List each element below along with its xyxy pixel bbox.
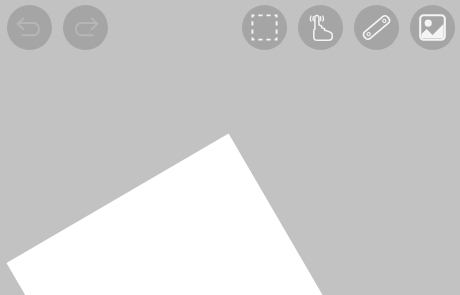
button[interactable]: Ruler: [354, 5, 399, 50]
button[interactable]: Undo: [7, 5, 52, 50]
button[interactable]: Select area: [242, 5, 287, 50]
button[interactable]: Touch draw: [298, 5, 343, 50]
button[interactable]: Insert image: [410, 5, 455, 50]
button[interactable]: Redo: [63, 5, 108, 50]
